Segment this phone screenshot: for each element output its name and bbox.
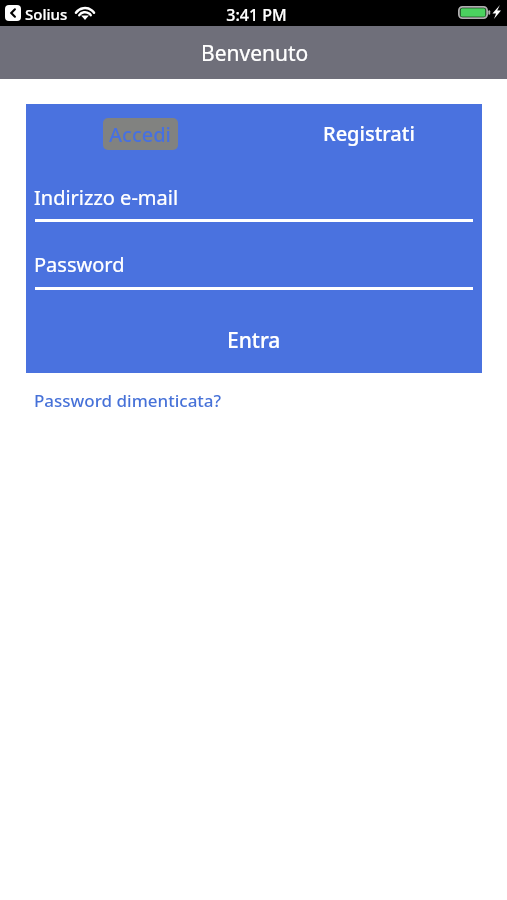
staticText: Registrati bbox=[323, 120, 415, 147]
staticText: Benvenuto bbox=[201, 39, 309, 68]
staticText: Password bbox=[34, 251, 125, 278]
button[interactable]: Registrati bbox=[289, 115, 449, 151]
staticText: Accedi bbox=[109, 121, 172, 148]
button[interactable]: Indirizzo e-mail bbox=[35, 172, 473, 222]
staticText: Password dimenticata? bbox=[34, 389, 222, 412]
staticText: Indirizzo e-mail bbox=[34, 184, 179, 211]
staticText: Solius bbox=[25, 4, 68, 24]
button[interactable]: Password dimenticata? bbox=[33, 387, 223, 414]
staticText: Entra bbox=[227, 326, 281, 355]
button[interactable]: Password bbox=[35, 239, 473, 290]
other: Wi-Fi bbox=[74, 6, 96, 20]
button[interactable]: Accedi bbox=[103, 118, 178, 150]
staticText: 3:41 PM bbox=[3, 4, 507, 26]
button[interactable]: Back to Solius bbox=[5, 5, 21, 21]
other: Battery full, charging bbox=[458, 6, 491, 19]
button[interactable]: Entra bbox=[26, 312, 482, 369]
